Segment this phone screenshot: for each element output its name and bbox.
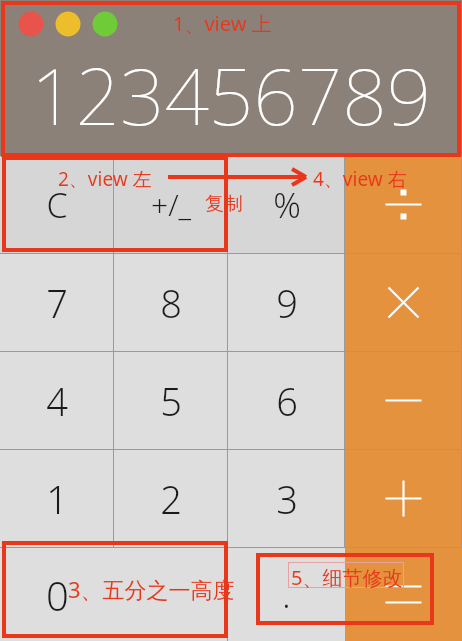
staticText: 5、细节修改 (291, 564, 403, 591)
staticText: 7 (46, 277, 68, 329)
staticText: 0 (46, 568, 69, 622)
button[interactable]: 4 (0, 352, 114, 449)
staticText: % (273, 182, 301, 228)
staticText: 复制 (205, 192, 243, 216)
button[interactable]: Equals (345, 548, 462, 641)
staticText: 6 (276, 375, 298, 427)
button[interactable]: 6 (228, 352, 345, 449)
button[interactable]: 3 (228, 450, 345, 547)
button[interactable]: . (228, 548, 345, 641)
staticText: . (282, 572, 291, 618)
button[interactable]: Multiply (345, 254, 462, 351)
staticText: 123456789 (31, 42, 432, 148)
button[interactable]: +/_ (114, 156, 228, 253)
staticText: 8 (160, 277, 182, 329)
staticText: 3 (276, 473, 298, 525)
staticText: 1、view 上 (173, 10, 272, 37)
staticText: 3、五分之一高度 (68, 574, 235, 604)
staticText: 2、view 左 (58, 166, 152, 192)
staticText: +/_ (151, 184, 192, 225)
staticText: C (46, 182, 68, 228)
staticText: 9 (276, 277, 298, 329)
button[interactable]: C (0, 156, 114, 253)
button[interactable]: 2 (114, 450, 228, 547)
button[interactable]: 8 (114, 254, 228, 351)
button[interactable]: Subtract (345, 352, 462, 449)
staticText: 4、view 右 (313, 166, 407, 192)
button[interactable]: Add (345, 450, 462, 547)
staticText: 2 (160, 473, 182, 525)
button[interactable]: 7 (0, 254, 114, 351)
button[interactable]: 9 (228, 254, 345, 351)
staticText: 5 (160, 375, 182, 427)
staticText: 4 (46, 375, 68, 427)
button[interactable]: 0 (0, 548, 228, 641)
button[interactable]: 5 (114, 352, 228, 449)
button[interactable]: Divide (345, 156, 462, 253)
staticText: 1 (46, 473, 68, 525)
button[interactable]: % (228, 156, 345, 253)
button[interactable]: 1 (0, 450, 114, 547)
